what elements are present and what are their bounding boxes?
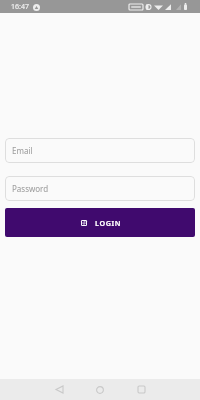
button[interactable]: Email [5, 138, 195, 163]
staticText: LOGIN [95, 218, 122, 228]
button[interactable]: Recent apps [124, 379, 158, 400]
button[interactable]: Back [42, 379, 76, 400]
staticText: Email [12, 145, 33, 156]
button[interactable]: Password [5, 176, 195, 201]
staticText: Password [12, 183, 49, 194]
staticText: 16:47 [11, 2, 29, 12]
button[interactable]: LOGIN [5, 208, 195, 237]
button[interactable]: Home [83, 379, 117, 400]
